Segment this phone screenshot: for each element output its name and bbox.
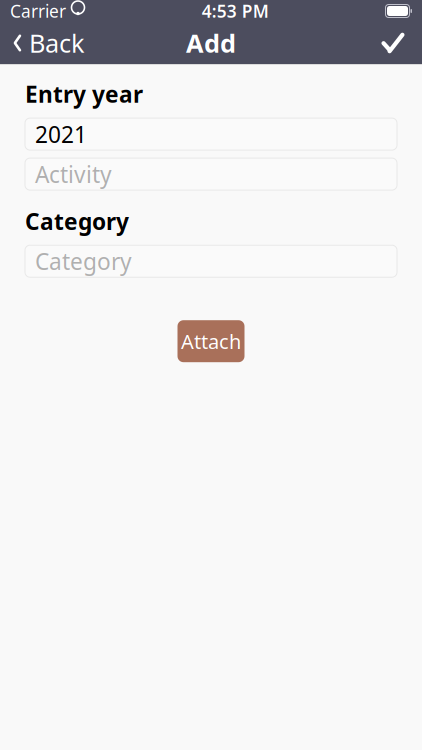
staticText: Attach <box>181 328 241 354</box>
staticText: 2021 <box>35 119 87 149</box>
staticText: Back <box>29 26 85 60</box>
staticText: Activity <box>35 159 112 189</box>
button[interactable]: Attach <box>177 320 244 362</box>
staticText: Carrier <box>10 0 66 22</box>
staticText: Entry year <box>25 79 143 109</box>
button[interactable]: Save <box>364 22 422 64</box>
button[interactable]: Back <box>0 22 97 64</box>
staticText: Category <box>25 206 129 236</box>
staticText: Category <box>35 246 132 276</box>
staticText: Add <box>186 26 236 60</box>
staticText: 4:53 PM <box>202 0 269 22</box>
